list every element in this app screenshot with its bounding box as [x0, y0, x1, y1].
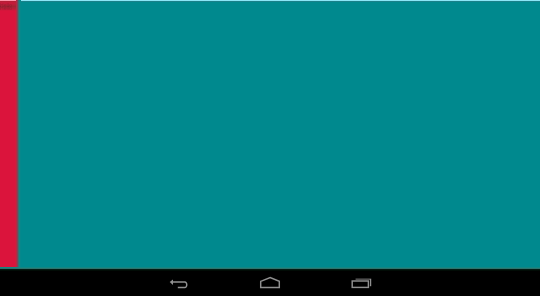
staticText: Hello [0, 5, 13, 12]
button[interactable]: Back [144, 269, 214, 296]
button[interactable]: Home [235, 269, 305, 296]
button[interactable]: Hello [0, 0, 21, 296]
staticText: Hello [0, 2, 13, 9]
button[interactable]: Recent apps [326, 269, 396, 296]
